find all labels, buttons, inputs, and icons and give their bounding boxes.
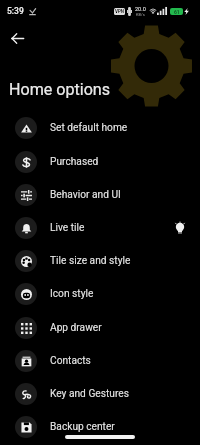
- button[interactable]: Set default home: [0, 111, 200, 144]
- staticText: Purchased: [50, 156, 99, 168]
- staticText: VPN: [115, 9, 125, 14]
- staticText: Tile size and style: [50, 255, 131, 267]
- button[interactable]: Back: [8, 28, 26, 49]
- staticText: Set default home: [50, 122, 128, 134]
- staticText: Key and Gestures: [50, 388, 129, 400]
- button[interactable]: Tile size and style: [0, 244, 200, 277]
- staticText: 5:39: [7, 6, 24, 16]
- staticText: Icon style: [50, 288, 94, 300]
- button[interactable]: Live tile: [0, 211, 200, 244]
- button[interactable]: App drawer: [0, 311, 200, 344]
- button[interactable]: Behavior and UI: [0, 178, 200, 211]
- button[interactable]: Key and Gestures: [0, 377, 200, 410]
- button[interactable]: Backup center: [0, 410, 200, 443]
- button[interactable]: Contacts: [0, 344, 200, 377]
- button[interactable]: Live tile hint: [172, 220, 188, 236]
- staticText: App drawer: [50, 322, 102, 334]
- staticText: 61: [174, 9, 180, 15]
- staticText: 20.0: [135, 6, 146, 12]
- staticText: Contacts: [50, 355, 91, 367]
- staticText: Backup center: [50, 421, 115, 433]
- staticText: Home options: [9, 80, 111, 99]
- button[interactable]: Purchased: [0, 145, 200, 178]
- button[interactable]: Icon style: [0, 277, 200, 310]
- staticText: Behavior and UI: [50, 189, 121, 201]
- staticText: KB/s: [136, 12, 145, 17]
- staticText: Live tile: [50, 222, 85, 234]
